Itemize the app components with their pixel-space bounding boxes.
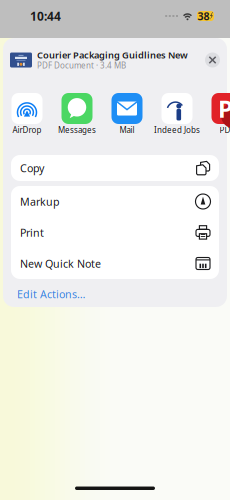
staticText: Courier Packaging Guidlines New <box>37 49 188 61</box>
button[interactable]: Indeed Jobs <box>152 93 202 138</box>
button[interactable]: Close <box>205 52 220 67</box>
button[interactable]: Markup <box>11 186 219 217</box>
button[interactable]: Print <box>11 217 219 248</box>
staticText: Edit Actions… <box>17 287 85 301</box>
staticText: Markup <box>20 194 60 209</box>
button[interactable]: New Quick Note <box>11 248 219 279</box>
staticText: Indeed Jobs <box>154 125 200 135</box>
staticText: New Quick Note <box>20 256 101 271</box>
staticText: 10:44 <box>30 8 61 24</box>
button[interactable]: P <box>202 93 230 138</box>
staticText: AirDrop <box>12 125 41 135</box>
staticText: 38 <box>197 9 209 23</box>
staticText: PDF <box>219 125 230 135</box>
button[interactable]: Messages <box>52 93 102 138</box>
button[interactable]: Copy <box>11 152 219 183</box>
staticText: P <box>218 93 230 124</box>
button[interactable]: AirDrop <box>2 93 52 138</box>
button[interactable]: Edit Actions… <box>3 283 227 305</box>
button[interactable]: Mail <box>102 93 152 138</box>
staticText: Messages <box>58 125 96 135</box>
staticText: Copy <box>20 161 44 175</box>
staticText: Mail <box>119 125 134 135</box>
staticText: Print <box>20 225 44 240</box>
staticText: PDF Document · 3.4 MB <box>37 60 126 71</box>
